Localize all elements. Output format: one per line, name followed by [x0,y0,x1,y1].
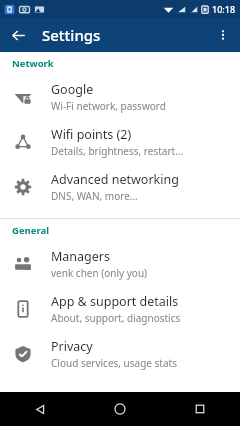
button[interactable]: Managers [0,241,240,286]
staticText: Cloud services, usage stats [51,356,177,370]
staticText: Privacy [51,338,93,355]
staticText: App & support details [51,293,179,310]
button[interactable]: Privacy [0,331,240,376]
button[interactable]: Home [80,392,160,426]
button[interactable]: Back [0,392,80,426]
staticText: Wi-Fi network, password [51,99,166,113]
staticText: venk chen (only you) [51,266,148,280]
staticText: About, support, diagnostics [51,311,181,325]
staticText: Settings [42,25,101,45]
staticText: General [12,224,49,237]
button[interactable]: Google [0,74,240,119]
staticText: Details, brightness, restart… [51,144,184,158]
staticText: Advanced networking [51,171,179,188]
staticText: 10:18 [212,3,236,15]
button[interactable]: More options [210,22,236,48]
button[interactable]: Recent apps [160,392,240,426]
button[interactable]: App & support details [0,286,240,331]
button[interactable]: Wifi points (2) [0,119,240,164]
staticText: Managers [51,248,110,265]
staticText: Network [12,57,54,70]
staticText: Wifi points (2) [51,126,132,143]
button[interactable]: Back [5,22,31,48]
staticText: DNS, WAN, more… [51,189,138,203]
button[interactable]: Advanced networking [0,164,240,209]
staticText: Google [51,81,94,98]
